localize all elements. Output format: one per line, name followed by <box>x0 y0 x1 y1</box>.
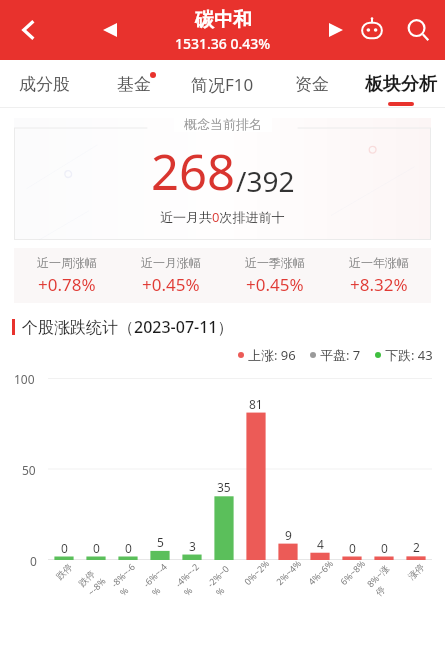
staticText: 6%~8% <box>337 557 368 587</box>
staticText: 35 <box>217 479 231 495</box>
staticText: 2%~4% <box>273 557 304 587</box>
staticText: -8%~-6% <box>108 558 148 598</box>
staticText: 概念当前排名 <box>184 116 262 132</box>
button[interactable]: AI assistant <box>349 7 395 53</box>
staticText: 5 <box>157 534 164 550</box>
staticText: -4%~-2% <box>172 558 212 598</box>
button[interactable]: 近一年涨幅 <box>327 255 431 296</box>
staticText: 0 <box>61 540 68 556</box>
staticText: 板块分析 <box>365 73 437 96</box>
staticText: 0 <box>349 540 356 556</box>
button[interactable]: 近一季涨幅 <box>223 255 327 296</box>
staticText: 下跌: 43 <box>385 346 433 364</box>
staticText: 成分股 <box>19 74 70 95</box>
staticText: 资金 <box>295 74 329 95</box>
staticText: 碳中和 <box>195 8 252 32</box>
button[interactable]: 基金 <box>89 60 178 108</box>
staticText: +0.45% <box>246 273 304 296</box>
staticText: 平盘: 7 <box>320 346 361 364</box>
button[interactable]: 资金 <box>267 60 356 108</box>
staticText: 81 <box>249 396 263 412</box>
staticText: 50 <box>22 462 36 478</box>
staticText: +8.32% <box>350 273 408 296</box>
staticText: /392 <box>236 162 295 200</box>
staticText: 3 <box>189 538 196 554</box>
staticText: 跌停~-8% <box>76 558 116 598</box>
staticText: 个股涨跌统计（2023-07-11） <box>22 316 234 338</box>
button[interactable]: 板块分析 <box>356 60 445 108</box>
staticText: 近一周涨幅 <box>37 255 97 270</box>
staticText: 100 <box>14 371 35 387</box>
staticText: 近一年涨幅 <box>349 255 409 270</box>
button[interactable]: Search <box>395 7 441 53</box>
staticText: 0 <box>381 540 388 556</box>
staticText: 9 <box>285 527 292 543</box>
staticText: 简况F10 <box>191 73 254 96</box>
staticText: 上涨: 96 <box>248 346 296 364</box>
staticText: 268 <box>151 138 236 205</box>
staticText: -2%~0% <box>204 558 244 598</box>
staticText: 8%~涨停 <box>364 558 404 599</box>
button[interactable]: Next sector <box>319 13 353 47</box>
staticText: +0.45% <box>142 273 200 296</box>
staticText: 0%~2% <box>241 557 272 587</box>
staticText: 基金 <box>117 74 151 95</box>
staticText: 近一月涨幅 <box>141 255 201 270</box>
button[interactable]: 近一月涨幅 <box>119 255 223 296</box>
staticText: 涨停 <box>406 561 426 582</box>
staticText: 4 <box>317 536 324 552</box>
staticText: 近一月共0次排进前十 <box>160 208 285 226</box>
staticText: -6%~-4% <box>140 558 180 598</box>
button[interactable]: 概念当前排名 <box>14 118 431 240</box>
staticText: 0 <box>93 540 100 556</box>
button[interactable]: 近一周涨幅 <box>14 255 119 296</box>
button[interactable]: 成分股 <box>0 60 89 108</box>
staticText: 近一季涨幅 <box>245 255 305 270</box>
button[interactable]: 简况F10 <box>178 60 267 108</box>
staticText: 2 <box>413 539 420 555</box>
button[interactable]: Previous sector <box>93 13 127 47</box>
staticText: +0.78% <box>38 273 96 296</box>
staticText: 0 <box>125 540 132 556</box>
button[interactable]: Back <box>6 7 52 53</box>
staticText: 1531.36 0.43% <box>175 34 271 53</box>
staticText: 0 <box>30 553 37 569</box>
staticText: 4%~6% <box>305 557 336 587</box>
staticText: 跌停 <box>54 561 74 582</box>
